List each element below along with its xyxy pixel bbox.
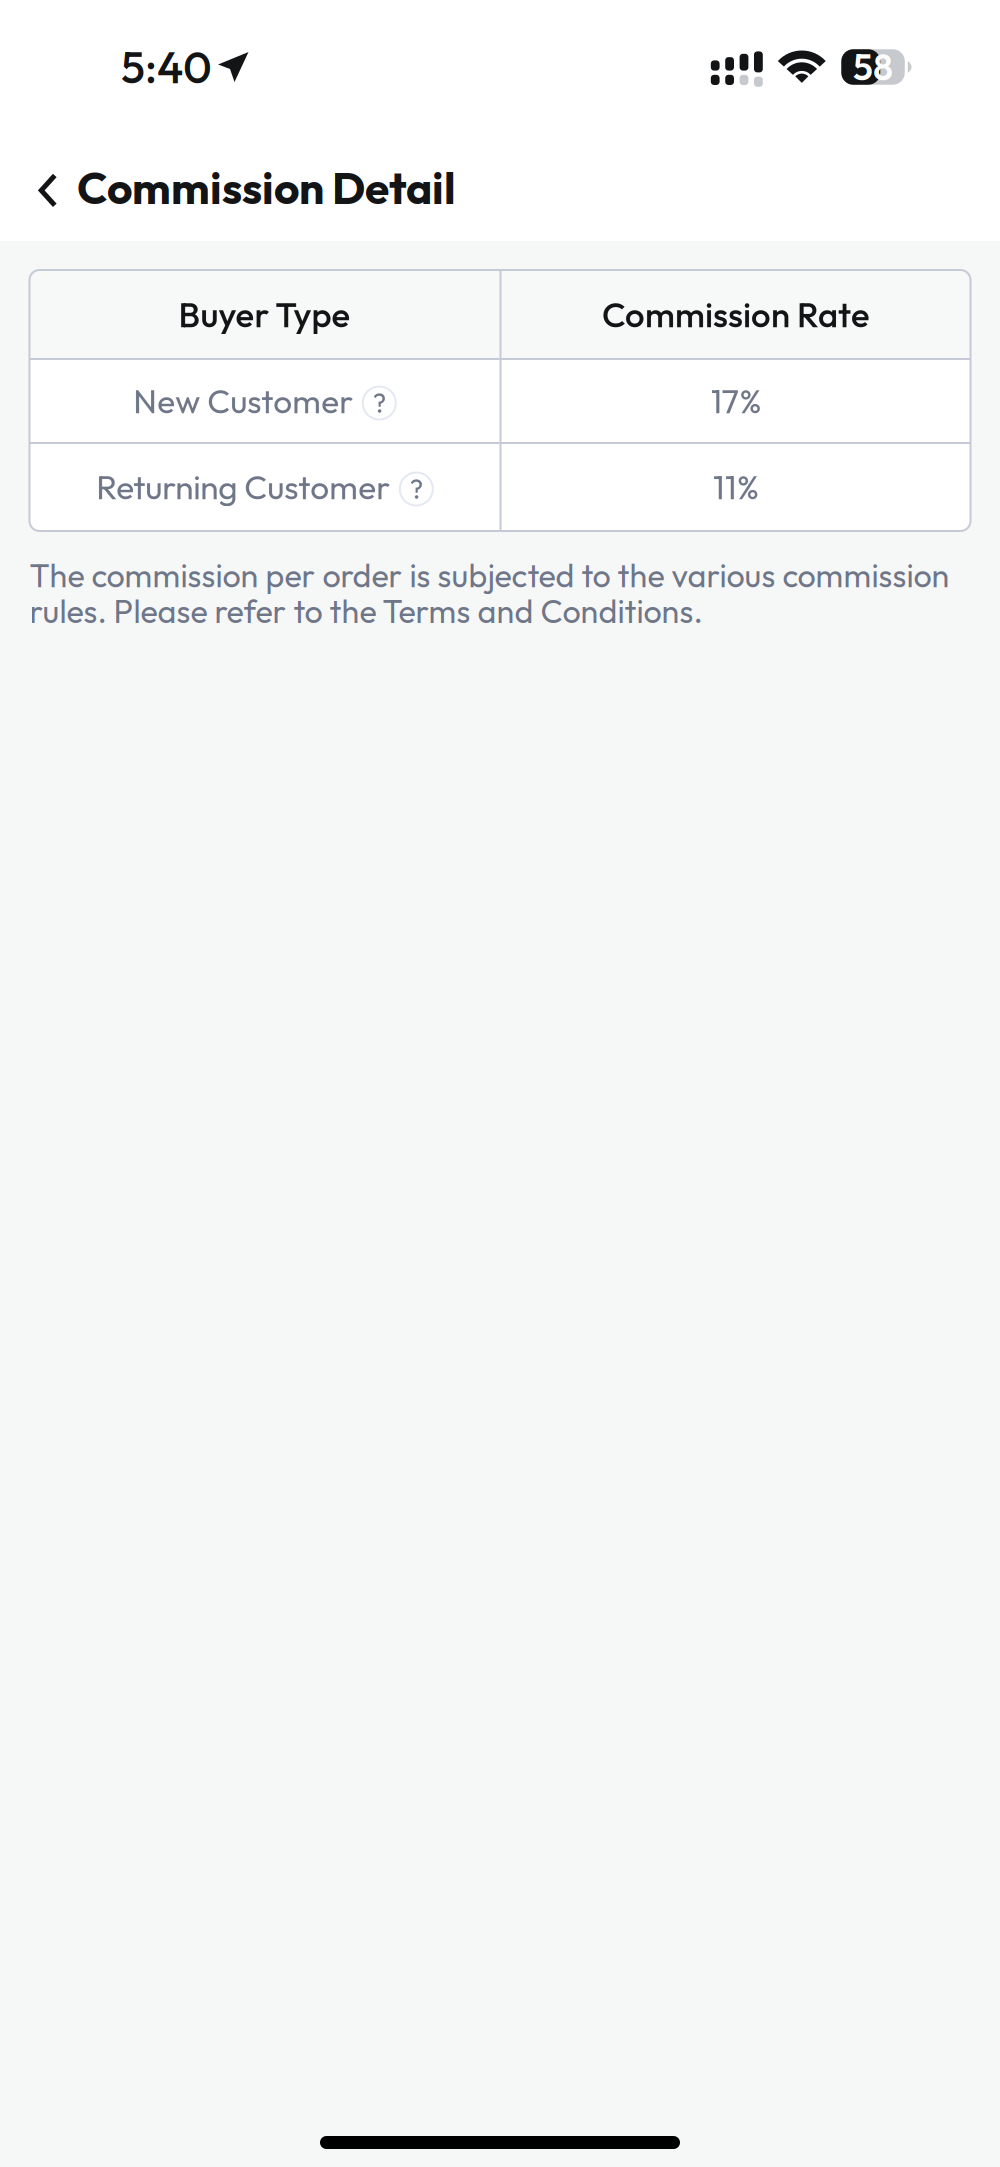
button[interactable]: Back — [19, 143, 77, 231]
staticText: Commission Detail — [77, 160, 456, 215]
button[interactable]: New Customer — [29, 360, 970, 442]
button[interactable]: Returning Customer — [29, 444, 970, 530]
staticText: ? — [373, 386, 386, 420]
staticText: 58 — [853, 44, 893, 90]
staticText: Returning Customer — [96, 466, 390, 508]
staticText: Commission Rate — [602, 293, 870, 336]
staticText: ? — [410, 472, 423, 506]
staticText: rules. Please refer to the Terms and Con… — [29, 591, 702, 631]
staticText: 17% — [710, 380, 761, 422]
staticText: 5:40 — [121, 39, 212, 95]
staticText: The commission per order is subjected to… — [29, 555, 949, 596]
staticText: Buyer Type — [178, 293, 350, 336]
staticText: 11% — [713, 466, 759, 508]
staticText: New Customer — [133, 380, 353, 422]
